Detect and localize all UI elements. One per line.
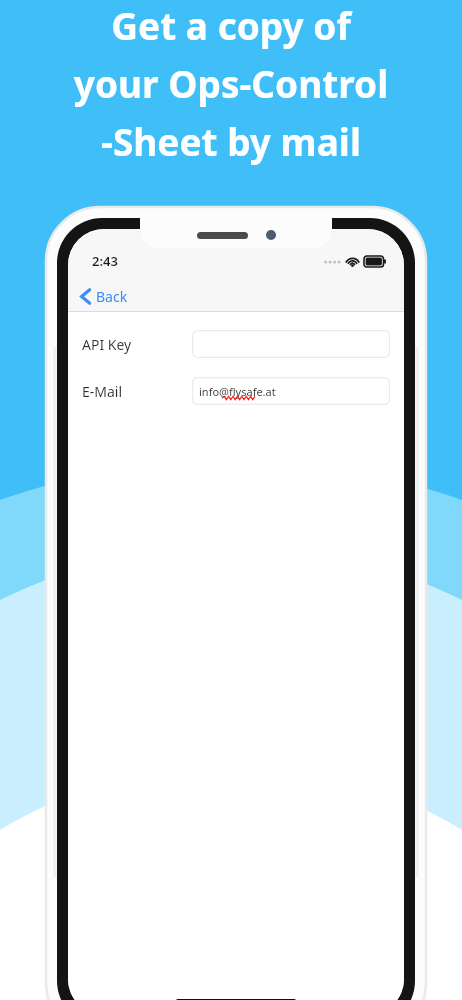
staticText: Back — [96, 287, 128, 306]
staticText: info@flysafe.at — [199, 384, 276, 399]
button[interactable]: Back — [68, 283, 142, 310]
staticText: 2:43 — [92, 252, 118, 270]
staticText: Get a copy of your Ops-Control -Sheet by… — [8, 0, 454, 166]
button[interactable]: API Key — [68, 330, 404, 358]
staticText: API Key — [82, 335, 192, 354]
staticText: E-Mail — [82, 382, 192, 401]
button[interactable]: E-Mail — [68, 377, 404, 405]
